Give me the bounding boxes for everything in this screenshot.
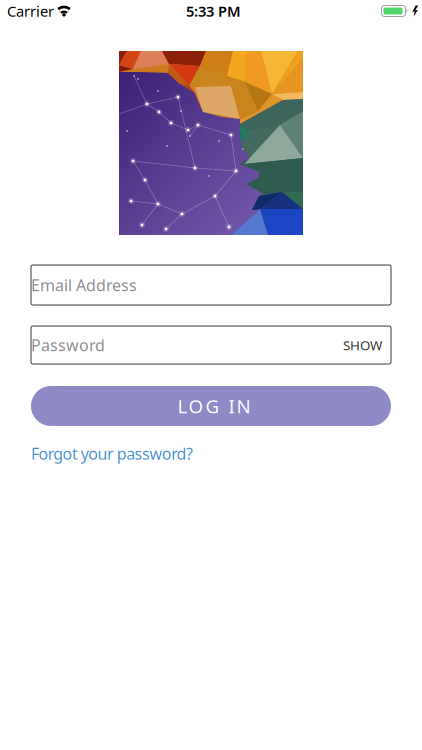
staticText: Email Address <box>31 274 137 296</box>
staticText: Forgot your password? <box>31 443 193 464</box>
button[interactable]: LOG IN <box>31 386 391 426</box>
staticText: SHOW <box>343 336 382 354</box>
button[interactable]: SHOW <box>343 336 391 354</box>
button[interactable]: Forgot your password? <box>31 443 193 464</box>
staticText: Password <box>31 334 105 356</box>
staticText: LOG IN <box>177 394 250 418</box>
staticText: Carrier <box>7 1 54 21</box>
staticText: 5:33 PM <box>186 1 241 21</box>
